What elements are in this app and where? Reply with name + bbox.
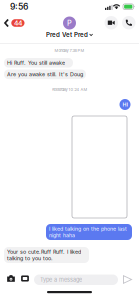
button[interactable]: Voice call <box>122 16 135 29</box>
button[interactable]: Camera <box>7 275 15 282</box>
staticText: HI <box>122 101 127 108</box>
staticText: P <box>67 18 72 27</box>
staticText: Your so cute.Ruff Ruff. I liked talking … <box>7 248 81 261</box>
staticText: Monday 7:38 PM <box>54 48 84 53</box>
button[interactable]: Photos <box>21 275 29 282</box>
staticText: Type a message <box>40 276 82 283</box>
staticText: Pred Vet Pred <box>46 31 88 38</box>
button[interactable]: Type a message <box>34 274 118 285</box>
staticText: 44 <box>14 19 22 27</box>
staticText: 9:56 <box>10 1 28 12</box>
staticText: I liked talking on the phone last night … <box>49 225 127 238</box>
staticText: Yesterday 10:24 AM <box>51 87 87 92</box>
staticText: Are you awake still. It's Doug <box>7 71 83 78</box>
button[interactable]: P <box>43 16 96 39</box>
button[interactable]: Send <box>123 275 132 284</box>
button[interactable]: Video call <box>104 16 118 29</box>
staticText: Hi Ruff. You still awake <box>7 60 65 66</box>
button[interactable]: Back <box>4 17 30 28</box>
